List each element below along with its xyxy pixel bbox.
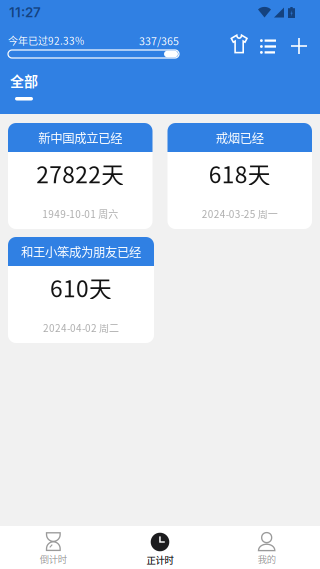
staticText: 11:27	[9, 4, 41, 20]
button[interactable]: Categories	[260, 25, 276, 59]
staticText: 全部	[10, 70, 38, 91]
button[interactable]: 倒计时	[0, 526, 107, 569]
staticText: 正计时	[146, 553, 173, 566]
staticText: 27822天	[36, 157, 124, 190]
button[interactable]: Theme	[230, 25, 248, 63]
staticText: 1949-10-01 周六	[42, 206, 118, 221]
button[interactable]: 全部	[0, 64, 48, 114]
button[interactable]: 新中国成立已经	[8, 123, 152, 229]
button[interactable]: Add	[291, 25, 307, 59]
button[interactable]: 戒烟已经	[167, 123, 312, 229]
staticText: 倒计时	[40, 552, 67, 566]
staticText: 我的	[258, 552, 276, 566]
staticText: 618天	[209, 157, 271, 190]
button[interactable]: 我的	[213, 526, 320, 569]
staticText: 和王小笨成为朋友已经	[21, 242, 141, 260]
button[interactable]: 正计时	[107, 526, 213, 569]
staticText: 2024-04-02 周二	[43, 320, 119, 335]
button[interactable]: 和王小笨成为朋友已经	[8, 237, 154, 343]
staticText: 337/365	[139, 33, 179, 48]
staticText: 戒烟已经	[216, 128, 264, 146]
staticText: 2024-03-25 周一	[202, 206, 278, 221]
staticText: 今年已过92.33%	[8, 33, 84, 48]
staticText: 新中国成立已经	[38, 128, 122, 146]
staticText: 610天	[50, 271, 112, 304]
